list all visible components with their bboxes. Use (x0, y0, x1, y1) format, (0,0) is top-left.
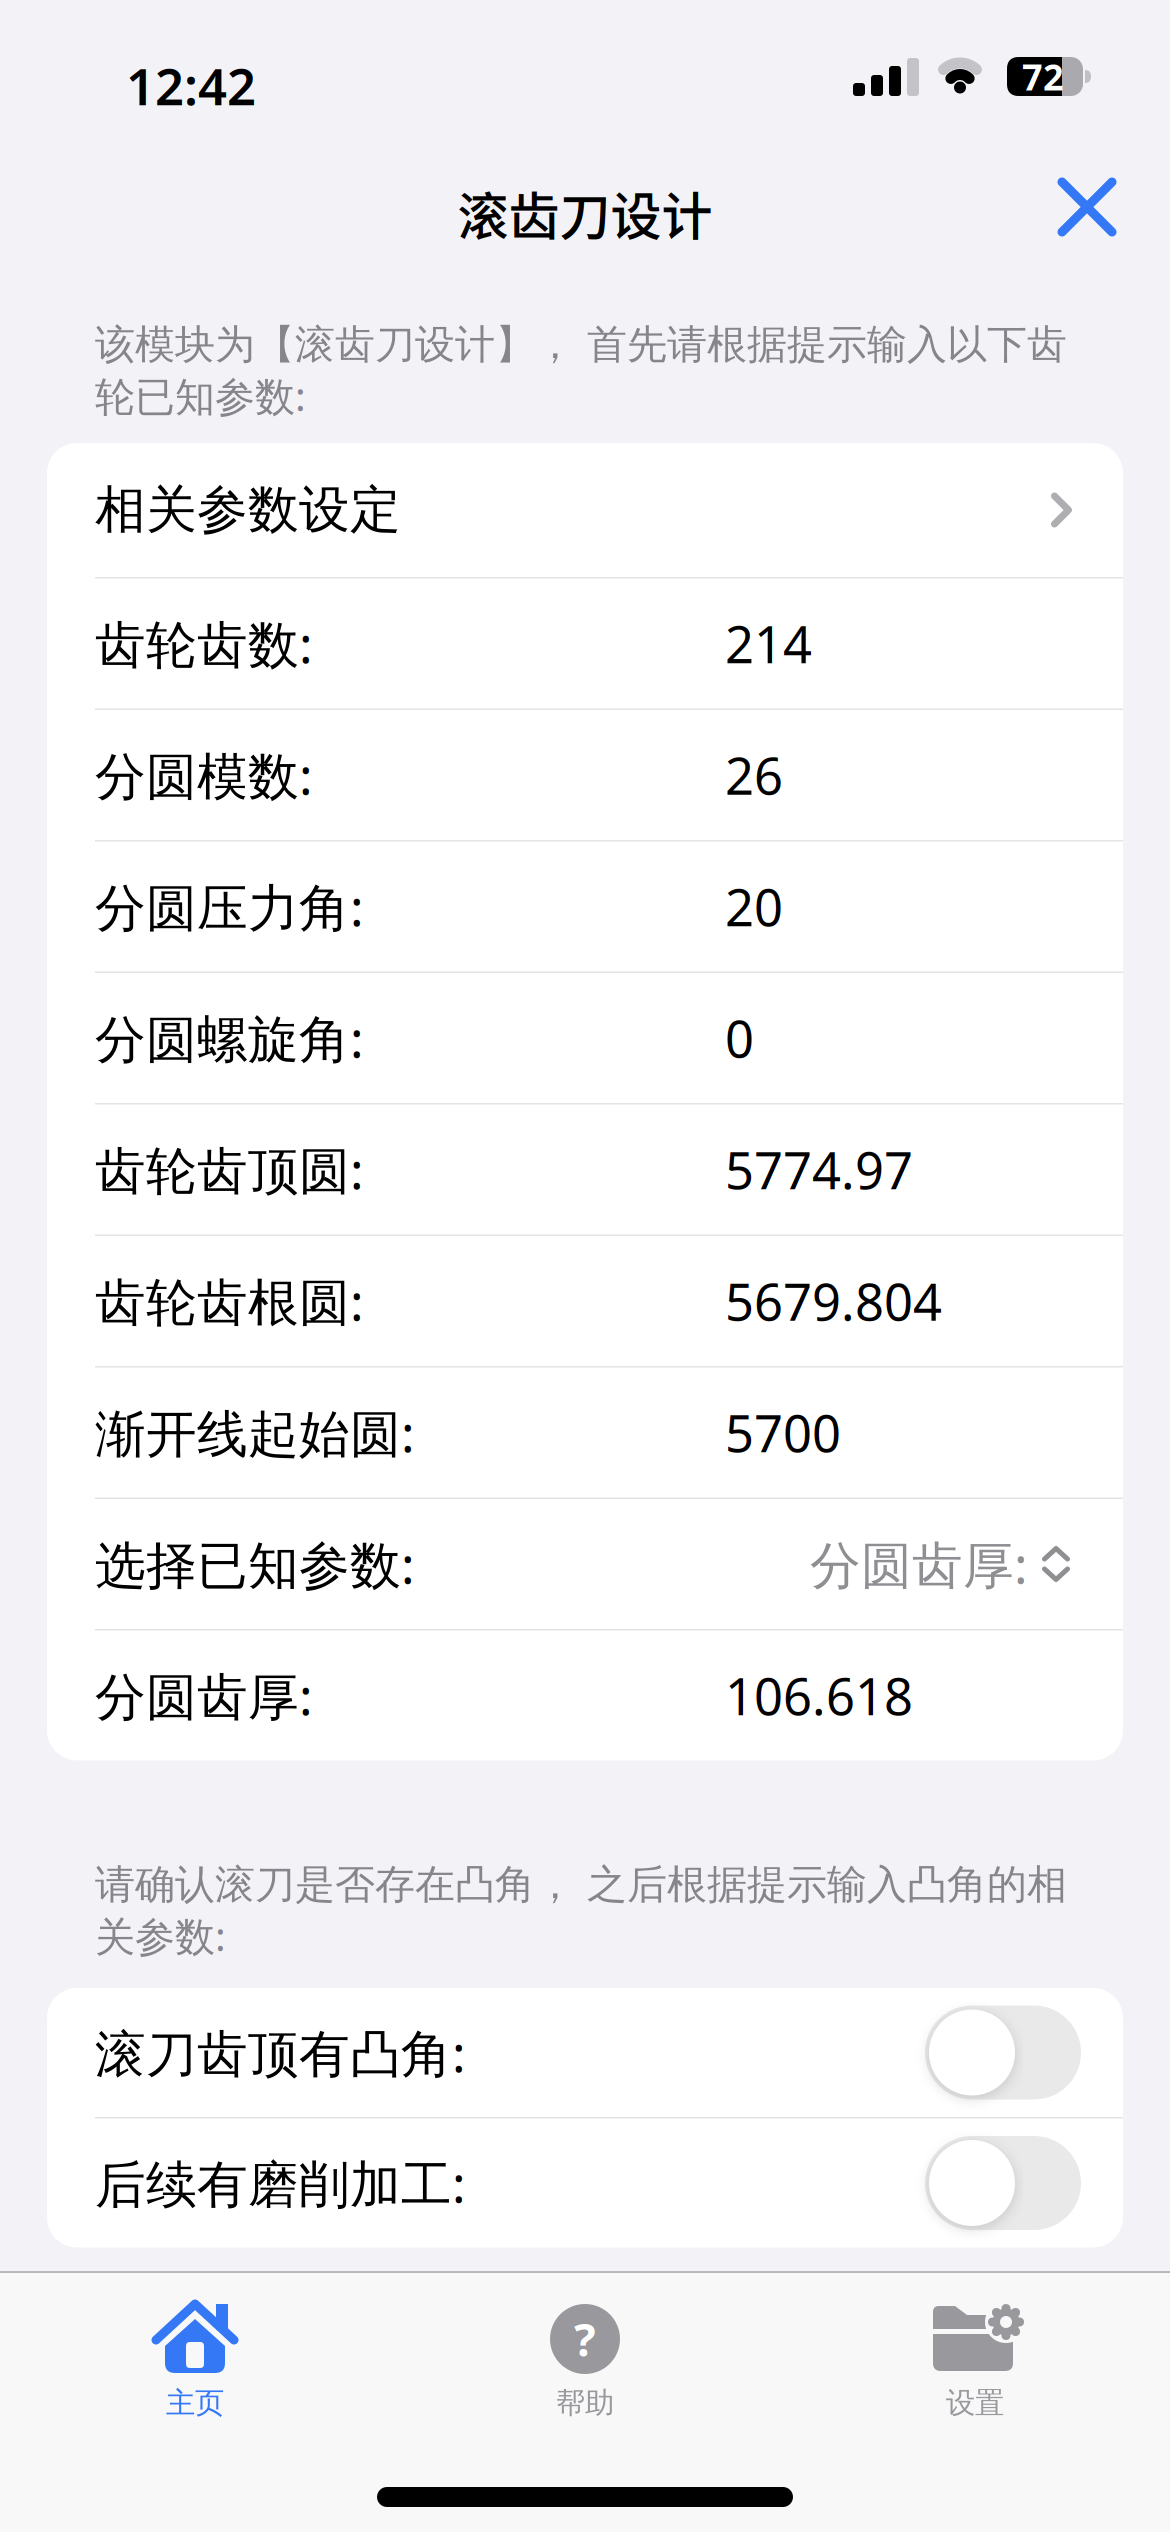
button[interactable]: 分圆压力角: (47, 841, 1123, 971)
staticText: 选择已知参数: (95, 1530, 415, 1598)
staticText: 0 (725, 1004, 754, 1072)
staticText: 轮已知参数: (95, 369, 306, 422)
staticText: 20 (725, 873, 783, 940)
button[interactable]: 渐开线起始圆: (47, 1367, 1123, 1497)
staticText: ? (574, 2309, 596, 2369)
staticText: 5700 (725, 1399, 841, 1466)
staticText: 滚齿刀设计 (457, 176, 712, 250)
button[interactable]: 关闭 (1042, 162, 1132, 252)
button[interactable]: 齿轮齿数: (47, 578, 1123, 708)
staticText: 分圆压力角: (95, 873, 364, 940)
button[interactable]: 选择已知参数: (47, 1499, 1123, 1629)
button[interactable]: 齿轮齿根圆: (47, 1236, 1123, 1366)
staticText: 帮助 (556, 2385, 614, 2421)
button[interactable]: 相关参数设定 (47, 443, 1123, 577)
staticText: 齿轮齿顶圆: (95, 1136, 364, 1203)
staticText: 5774.97 (725, 1136, 913, 1203)
staticText: 12:42 (126, 52, 256, 119)
staticText: 72 (1022, 53, 1064, 100)
staticText: 齿轮齿根圆: (95, 1267, 364, 1335)
button[interactable]: 设置 (780, 2280, 1170, 2450)
staticText: 分圆模数: (95, 741, 313, 809)
staticText: 请确认滚刀是否存在凸角， 之后根据提示输入凸角的相 (95, 1860, 1067, 1909)
staticText: 106.618 (725, 1662, 913, 1729)
staticText: 后续有磨削加工: (95, 2149, 466, 2217)
staticText: 26 (725, 741, 783, 809)
button[interactable]: 齿轮齿顶圆: (47, 1104, 1123, 1234)
button[interactable]: 滚刀齿顶有凸角: (925, 2005, 1081, 2099)
staticText: 设置 (946, 2385, 1004, 2421)
staticText: 5679.804 (725, 1267, 942, 1335)
button[interactable]: 主页 (0, 2280, 390, 2450)
staticText: 214 (725, 610, 812, 677)
button[interactable]: 后续有磨削加工: (925, 2136, 1081, 2230)
button[interactable]: 分圆模数: (47, 710, 1123, 840)
staticText: 关参数: (95, 1909, 226, 1962)
staticText: 分圆齿厚: (95, 1662, 313, 1729)
staticText: 主页 (166, 2385, 224, 2421)
staticText: 分圆齿厚: (810, 1530, 1028, 1598)
staticText: 该模块为【滚齿刀设计】， 首先请根据提示输入以下齿 (95, 320, 1067, 369)
staticText: 齿轮齿数: (95, 610, 313, 677)
button[interactable]: 分圆齿厚: (47, 1630, 1123, 1760)
staticText: 分圆螺旋角: (95, 1004, 364, 1072)
staticText: 相关参数设定 (95, 479, 401, 541)
staticText: 渐开线起始圆: (95, 1399, 415, 1466)
button[interactable]: 分圆螺旋角: (47, 973, 1123, 1103)
button[interactable]: ? (390, 2280, 780, 2450)
staticText: 滚刀齿顶有凸角: (95, 2019, 466, 2086)
